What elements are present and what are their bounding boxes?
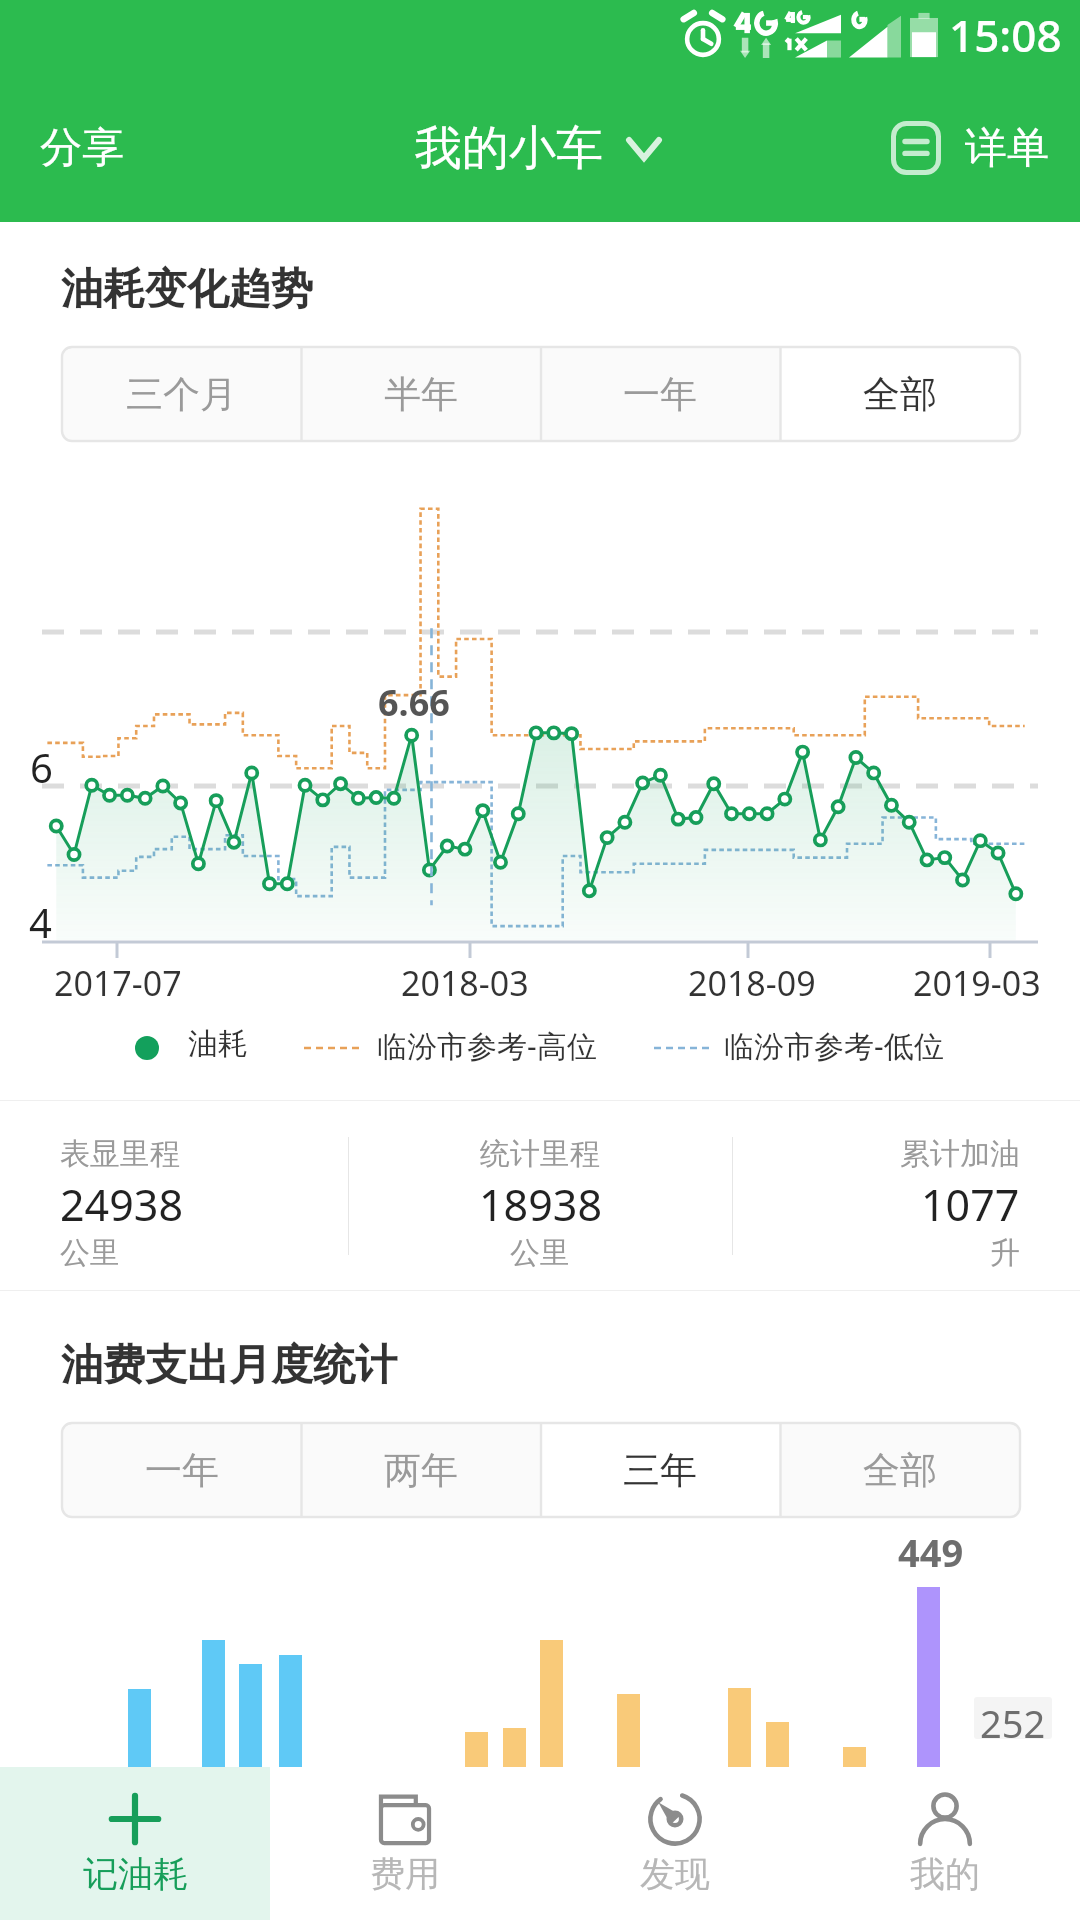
staticText: 累计加油 bbox=[900, 1135, 1020, 1173]
staticText: 详单 bbox=[965, 122, 1049, 175]
staticText: 全部 bbox=[863, 1447, 937, 1494]
staticText: 分享 bbox=[40, 122, 124, 175]
staticText: 我的小车 bbox=[415, 119, 603, 178]
button[interactable]: 全部 bbox=[780, 347, 1020, 441]
staticText: 半年 bbox=[384, 371, 458, 418]
staticText: 表显里程 bbox=[60, 1135, 180, 1173]
staticText: 我的 bbox=[910, 1852, 980, 1896]
staticText: 油耗变化趋势 bbox=[61, 263, 313, 316]
button[interactable]: 全部 bbox=[780, 1423, 1020, 1517]
staticText: 252 bbox=[980, 1697, 1046, 1739]
staticText: 18938 bbox=[479, 1175, 602, 1234]
staticText: 记油耗 bbox=[83, 1852, 188, 1896]
button[interactable]: 三个月 bbox=[62, 347, 301, 441]
staticText: 2018-09 bbox=[688, 960, 816, 1006]
staticText: 2019-03 bbox=[913, 960, 1041, 1006]
staticText: 2018-03 bbox=[401, 960, 529, 1006]
staticText: 三个月 bbox=[126, 371, 237, 418]
staticText: 6 bbox=[30, 740, 53, 794]
staticText: 全部 bbox=[863, 371, 937, 418]
staticText: 发现 bbox=[640, 1852, 710, 1896]
staticText: 4 bbox=[29, 895, 52, 949]
staticText: 油费支出月度统计 bbox=[61, 1339, 397, 1392]
staticText: 公里 bbox=[510, 1234, 570, 1272]
button[interactable]: 发现 bbox=[540, 1767, 810, 1920]
staticText: 449 bbox=[898, 1526, 964, 1578]
staticText: 临汾市参考-高位 bbox=[377, 1025, 597, 1066]
staticText: 统计里程 bbox=[480, 1135, 600, 1173]
button[interactable]: 记油耗 bbox=[0, 1767, 270, 1920]
staticText: 费用 bbox=[370, 1852, 440, 1896]
staticText: 临汾市参考-低位 bbox=[724, 1025, 944, 1066]
staticText: 24938 bbox=[60, 1175, 183, 1234]
button[interactable]: 一年 bbox=[62, 1423, 301, 1517]
staticText: 15:08 bbox=[949, 5, 1062, 65]
staticText: 6.66 bbox=[378, 678, 450, 727]
button[interactable]: 分享 bbox=[0, 74, 164, 222]
staticText: 公里 bbox=[60, 1234, 120, 1272]
button[interactable]: 三年 bbox=[540, 1423, 780, 1517]
staticText: 2017-07 bbox=[54, 960, 182, 1006]
button[interactable]: 一年 bbox=[540, 347, 780, 441]
button[interactable]: 我的 bbox=[810, 1767, 1080, 1920]
staticText: 油耗 bbox=[188, 1025, 248, 1063]
staticText: 1077 bbox=[921, 1175, 1020, 1234]
staticText: 一年 bbox=[623, 371, 697, 418]
button[interactable]: 两年 bbox=[301, 1423, 540, 1517]
staticText: 升 bbox=[990, 1234, 1020, 1272]
button[interactable]: 详单 bbox=[875, 74, 1080, 222]
button[interactable]: 半年 bbox=[301, 347, 540, 441]
staticText: 三年 bbox=[623, 1447, 697, 1494]
button[interactable]: 费用 bbox=[270, 1767, 540, 1920]
button[interactable]: 选择车辆 我的小车 bbox=[401, 97, 675, 200]
staticText: 两年 bbox=[384, 1447, 458, 1494]
staticText: 一年 bbox=[145, 1447, 219, 1494]
